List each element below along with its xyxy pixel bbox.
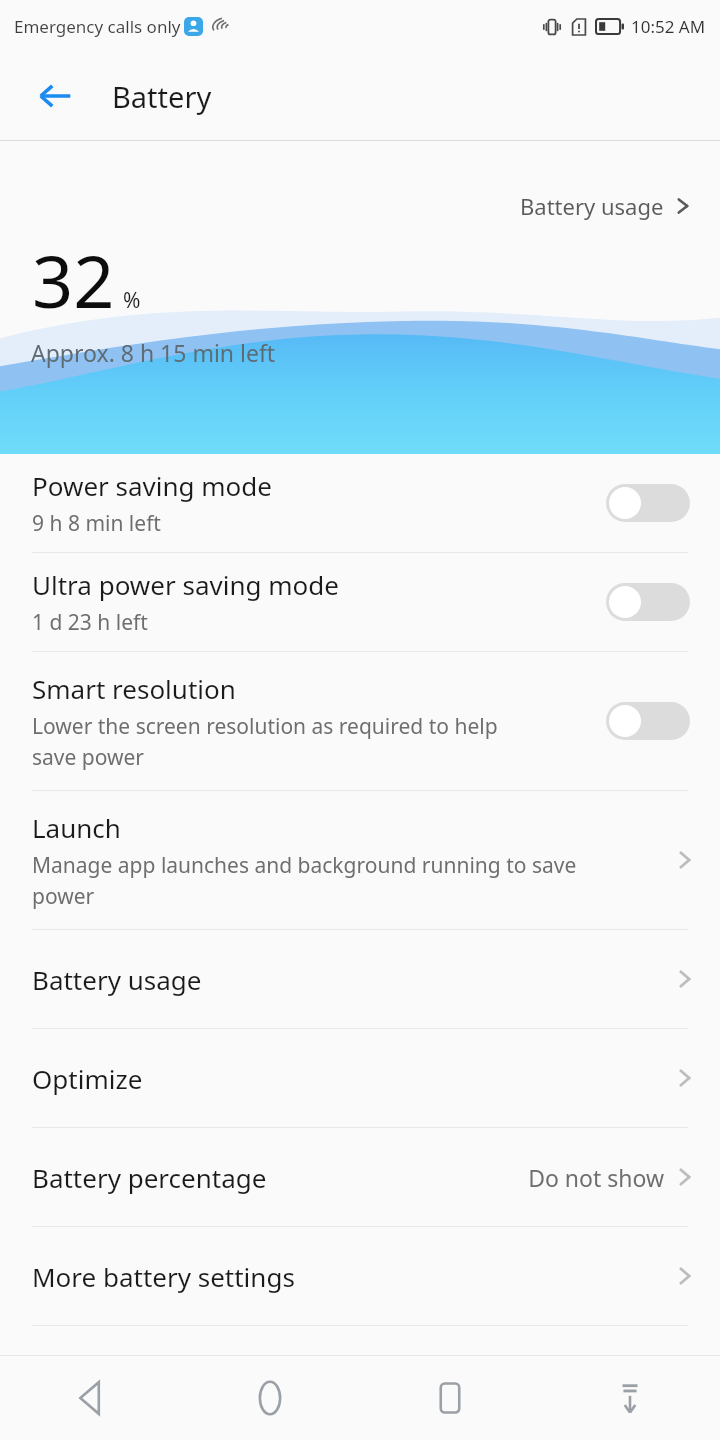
button[interactable]: Notifications (540, 1356, 720, 1440)
staticText: Ultra power saving mode (32, 567, 339, 602)
button[interactable]: Power saving mode (0, 454, 720, 552)
staticText: Lower the screen resolution as required … (32, 712, 498, 771)
button[interactable]: Ultra power saving mode (0, 553, 720, 651)
button[interactable]: Back (0, 1356, 180, 1440)
staticText: Optimize (32, 1061, 143, 1096)
staticText: Manage app launches and background runni… (32, 851, 577, 910)
staticText: More battery settings (32, 1259, 295, 1294)
staticText: 32 (32, 231, 115, 329)
button[interactable]: Home (180, 1356, 360, 1440)
button[interactable]: Toggle (606, 583, 690, 621)
button[interactable]: Battery usage (512, 185, 698, 227)
staticText: Battery percentage (32, 1160, 267, 1195)
button[interactable]: Toggle (606, 702, 690, 740)
button[interactable]: Toggle (606, 484, 690, 522)
staticText: % (123, 286, 141, 315)
staticText: Power saving mode (32, 468, 273, 503)
staticText: 9 h 8 min left (32, 509, 161, 538)
button[interactable]: Battery percentage (0, 1128, 720, 1226)
staticText: 1 d 23 h left (32, 608, 148, 637)
button[interactable]: More battery settings (0, 1227, 720, 1325)
staticText: 10:52 AM (631, 15, 706, 38)
staticText: Battery usage (520, 191, 664, 221)
staticText: Battery (112, 77, 212, 116)
staticText: Launch (32, 810, 121, 845)
button[interactable]: Back (20, 61, 90, 131)
button[interactable]: Recents (360, 1356, 540, 1440)
button[interactable]: Smart resolution (0, 652, 720, 790)
staticText: Emergency calls only (14, 15, 181, 38)
button[interactable]: Battery usage (0, 930, 720, 1028)
button[interactable]: Optimize (0, 1029, 720, 1127)
staticText: Battery usage (32, 962, 202, 997)
staticText: Smart resolution (32, 671, 236, 706)
button[interactable]: Launch (0, 791, 720, 929)
staticText: Approx. 8 h 15 min left (31, 337, 276, 368)
staticText: Do not show (528, 1162, 664, 1193)
